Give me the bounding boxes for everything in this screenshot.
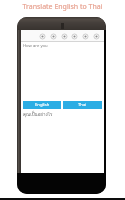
button[interactable]: Speak	[61, 33, 68, 40]
button[interactable]: More	[93, 33, 100, 40]
button[interactable]: Share	[50, 33, 57, 40]
staticText: คุณเป็นอย่างไร	[23, 111, 53, 118]
button[interactable]: Favorite	[82, 33, 89, 40]
staticText: Translate English to Thai	[0, 2, 125, 12]
staticText: English	[35, 102, 50, 108]
button[interactable]: Copy	[39, 33, 46, 40]
button[interactable]: Thai	[63, 101, 102, 109]
staticText: Thai	[78, 102, 87, 108]
staticText: How are you	[23, 43, 48, 49]
button[interactable]: Stop	[71, 33, 78, 40]
button[interactable]: English	[23, 101, 61, 109]
